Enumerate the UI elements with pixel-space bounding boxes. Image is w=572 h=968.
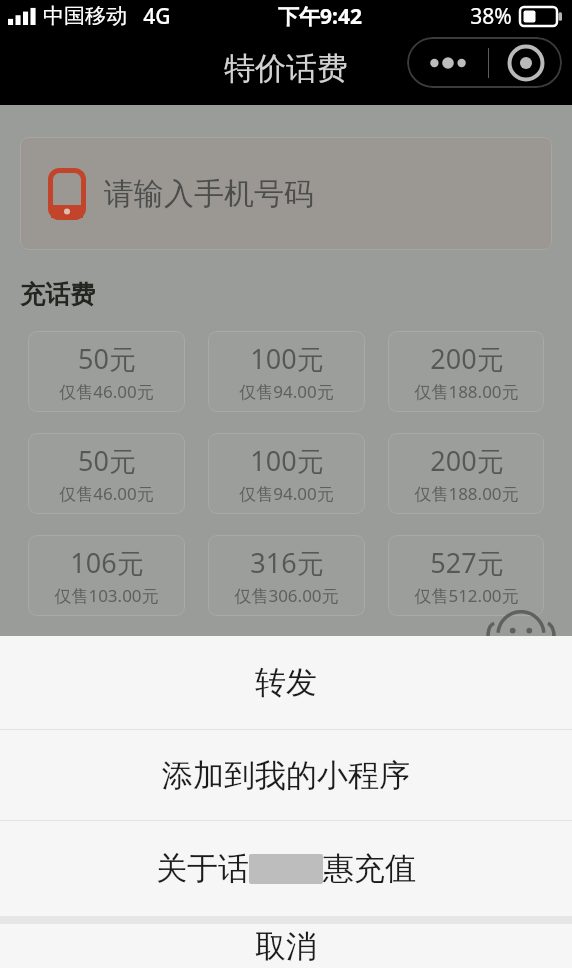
- staticText: 仅售46.00元: [59, 380, 154, 403]
- staticText: 添加到我的小程序: [162, 756, 410, 795]
- staticText: 316元: [250, 544, 324, 581]
- staticText: 200元: [430, 340, 504, 377]
- button[interactable]: 50元: [28, 331, 185, 412]
- button[interactable]: 取消: [0, 924, 572, 968]
- staticText: 中国移动: [43, 3, 127, 29]
- staticText: 下午9:42: [278, 2, 362, 31]
- staticText: 充话费: [20, 279, 95, 310]
- staticText: 仅售103.00元: [54, 584, 159, 607]
- staticText: 转发: [255, 663, 317, 702]
- button[interactable]: 客服: [489, 602, 553, 644]
- staticText: 106元: [70, 544, 144, 581]
- staticText: 仅售94.00元: [239, 482, 334, 505]
- staticText: 仅售94.00元: [239, 380, 334, 403]
- button[interactable]: 关闭: [489, 37, 562, 88]
- button[interactable]: 527元: [388, 535, 544, 616]
- button[interactable]: 50元: [28, 433, 185, 514]
- staticText: 仅售188.00元: [414, 482, 519, 505]
- staticText: 仅售512.00元: [414, 584, 519, 607]
- button[interactable]: 106元: [28, 535, 185, 616]
- staticText: 100元: [250, 442, 324, 479]
- button[interactable]: 200元: [388, 433, 544, 514]
- button[interactable]: 添加到我的小程序: [0, 730, 572, 820]
- button[interactable]: 转发: [0, 636, 572, 729]
- button[interactable]: 关于话: [0, 821, 572, 916]
- button[interactable]: 200元: [388, 331, 544, 412]
- button[interactable]: 100元: [208, 331, 365, 412]
- staticText: 200元: [430, 442, 504, 479]
- button[interactable]: 更多: [407, 37, 488, 88]
- staticText: 4G: [143, 2, 171, 31]
- staticText: 仅售188.00元: [414, 380, 519, 403]
- staticText: 请输入手机号码: [104, 175, 314, 213]
- staticText: 仅售46.00元: [59, 482, 154, 505]
- button[interactable]: 请输入手机号码: [20, 137, 552, 250]
- staticText: 特价话费: [224, 49, 348, 88]
- staticText: 取消: [255, 927, 317, 966]
- staticText: 527元: [430, 544, 504, 581]
- staticText: 关于话: [156, 849, 249, 888]
- staticText: 仅售306.00元: [234, 584, 339, 607]
- staticText: 50元: [78, 442, 136, 479]
- button[interactable]: 100元: [208, 433, 365, 514]
- button[interactable]: 316元: [208, 535, 365, 616]
- staticText: 100元: [250, 340, 324, 377]
- staticText: 惠充值: [323, 849, 416, 888]
- staticText: 50元: [78, 340, 136, 377]
- staticText: 38%: [470, 2, 512, 31]
